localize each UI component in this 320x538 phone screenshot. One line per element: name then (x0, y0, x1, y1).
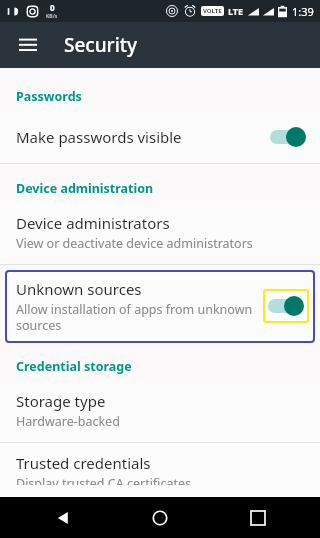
button[interactable]: Back (28, 497, 98, 538)
button[interactable]: Unknown sources (5, 270, 315, 343)
button[interactable]: Unknown sources toggle (268, 296, 304, 316)
staticText: Credential storage (16, 358, 132, 375)
staticText: KB/s (46, 13, 58, 20)
staticText: View or deactivate device administrators (16, 235, 253, 252)
button[interactable]: Recent apps (223, 497, 293, 538)
button[interactable]: Device administrators (0, 203, 320, 264)
staticText: Passwords (16, 88, 82, 105)
staticText: Make passwords visible (16, 127, 182, 147)
staticText: 1:39 (292, 4, 314, 19)
staticText: Storage type (16, 391, 106, 411)
staticText: Display trusted CA certificates (16, 475, 191, 485)
staticText: Trusted credentials (16, 453, 151, 473)
button[interactable]: Make passwords visible (0, 111, 320, 163)
staticText: 0 (50, 2, 55, 13)
staticText: LTE (228, 5, 244, 17)
staticText: Device administrators (16, 213, 170, 233)
staticText: Hardware-backed (16, 413, 120, 430)
button[interactable]: Trusted credentials (0, 443, 320, 497)
button[interactable]: Home (125, 497, 195, 538)
staticText: Allow installation of apps from unknown … (16, 301, 259, 333)
button[interactable]: Storage type (0, 381, 320, 442)
staticText: Security (64, 32, 138, 58)
staticText: Unknown sources (16, 279, 142, 299)
staticText: Device administration (16, 180, 154, 197)
staticText: VOLTE (203, 7, 222, 15)
button[interactable]: Open navigation menu (10, 27, 46, 63)
